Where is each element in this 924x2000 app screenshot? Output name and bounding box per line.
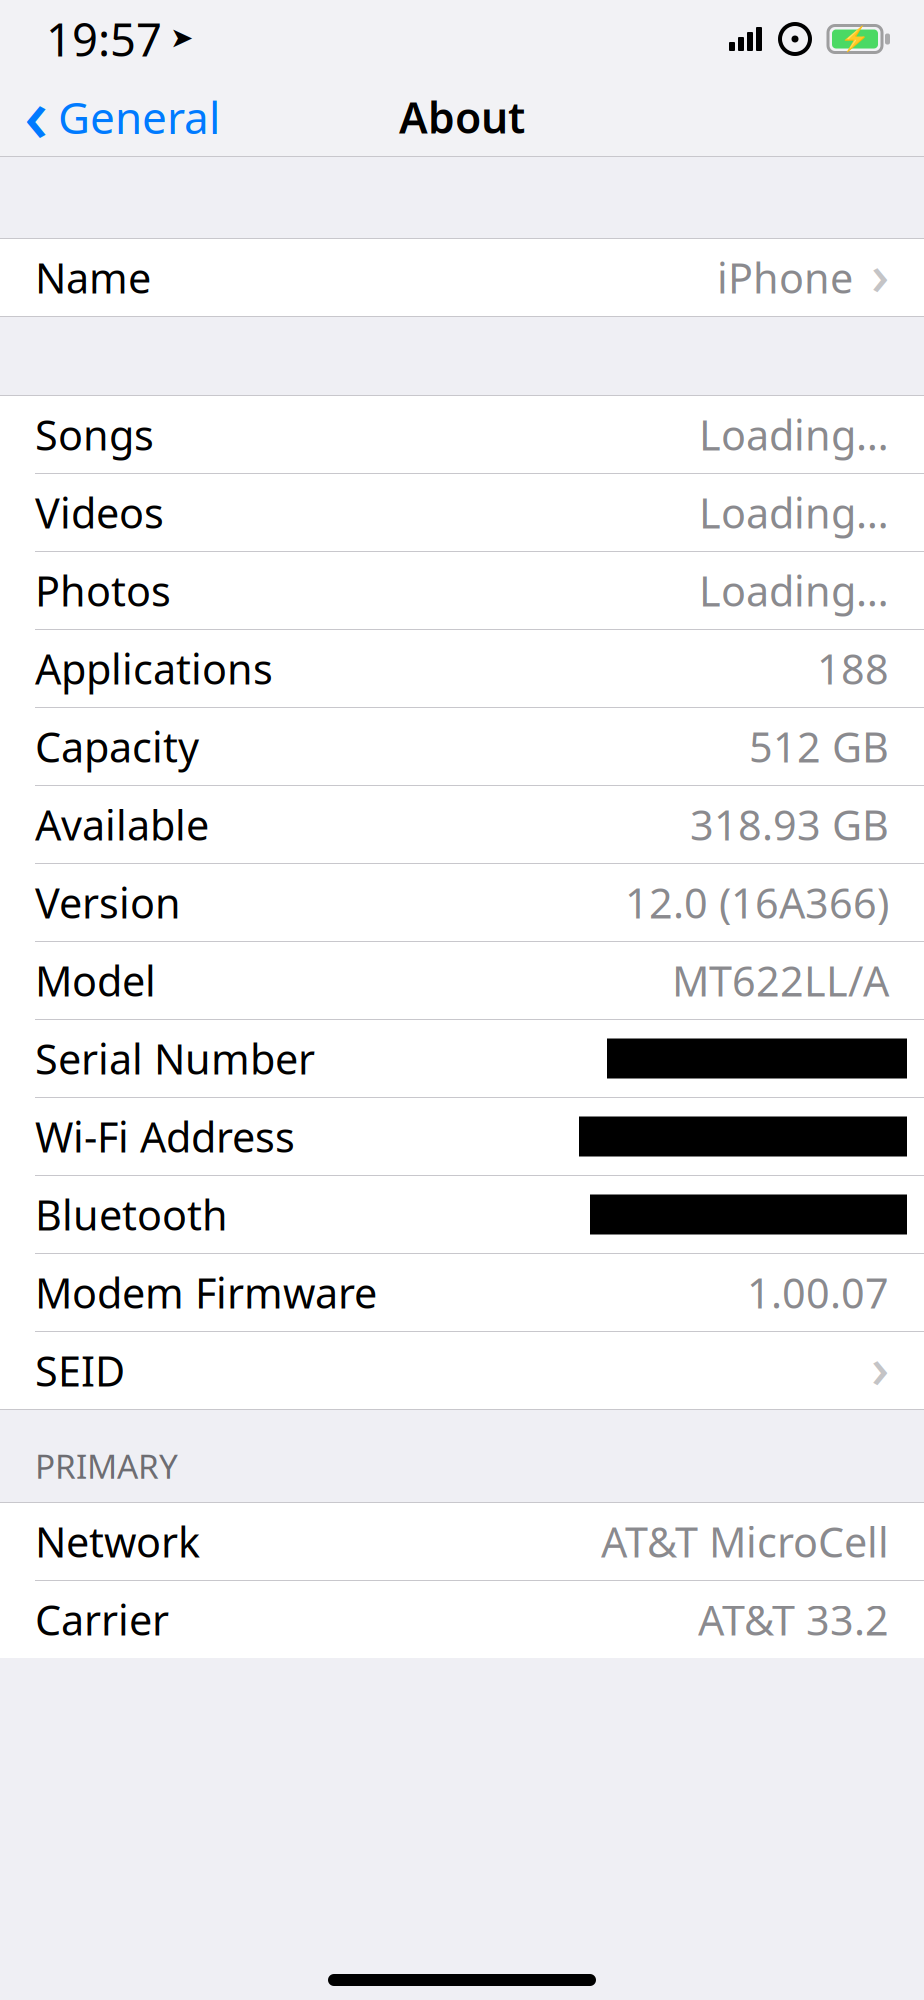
staticText: 188: [817, 641, 889, 696]
staticText: Modem Firmware: [35, 1265, 377, 1320]
staticText: 19:57: [46, 9, 162, 69]
button[interactable]: Modem Firmware: [0, 1254, 924, 1331]
staticText: 318.93 GB: [690, 797, 889, 852]
staticText: Songs: [35, 407, 154, 462]
button[interactable]: Videos: [0, 474, 924, 551]
staticText: Wi-Fi Address: [35, 1109, 295, 1164]
button[interactable]: Name: [0, 239, 924, 316]
staticText: Photos: [35, 563, 171, 618]
staticText: ➤: [170, 22, 193, 53]
staticText: iPhone: [717, 250, 853, 305]
staticText: Bluetooth: [35, 1187, 228, 1242]
button[interactable]: Bluetooth: [0, 1176, 924, 1253]
button[interactable]: Network: [0, 1503, 924, 1580]
staticText: 1.00.07: [747, 1265, 889, 1320]
staticText: ⚡: [840, 25, 870, 53]
button[interactable]: Carrier: [0, 1581, 924, 1658]
button[interactable]: ‹: [0, 78, 234, 156]
staticText: 12.0 (16A366): [625, 875, 889, 930]
staticText: AT&T 33.2: [698, 1592, 889, 1647]
button[interactable]: Applications: [0, 630, 924, 707]
staticText: AT&T MicroCell: [601, 1514, 889, 1569]
staticText: Network: [35, 1514, 200, 1569]
button[interactable]: Available: [0, 786, 924, 863]
staticText: Videos: [35, 485, 164, 540]
staticText: Loading…: [699, 563, 889, 618]
staticText: Serial Number: [35, 1031, 315, 1086]
button[interactable]: Songs: [0, 396, 924, 473]
button[interactable]: Version: [0, 864, 924, 941]
staticText: Model: [35, 953, 156, 1008]
staticText: Version: [35, 875, 181, 930]
staticText: Carrier: [35, 1592, 169, 1647]
button[interactable]: Capacity: [0, 708, 924, 785]
staticText: Loading…: [699, 485, 889, 540]
button[interactable]: Photos: [0, 552, 924, 629]
staticText: Applications: [35, 641, 273, 696]
staticText: Available: [35, 797, 209, 852]
button[interactable]: Serial Number: [0, 1020, 924, 1097]
button[interactable]: SEID: [0, 1332, 924, 1409]
staticText: 512 GB: [749, 719, 889, 774]
staticText: ›: [871, 236, 889, 311]
staticText: ›: [871, 1329, 889, 1404]
button[interactable]: Model: [0, 942, 924, 1019]
staticText: PRIMARY: [35, 1444, 178, 1488]
staticText: Capacity: [35, 719, 199, 774]
staticText: About: [399, 89, 525, 145]
staticText: MT622LL/A: [672, 953, 889, 1008]
button[interactable]: Wi-Fi Address: [0, 1098, 924, 1175]
staticText: Name: [35, 250, 151, 305]
staticText: ‹: [24, 63, 48, 163]
staticText: General: [58, 88, 220, 146]
staticText: Loading…: [699, 407, 889, 462]
staticText: SEID: [35, 1343, 125, 1398]
